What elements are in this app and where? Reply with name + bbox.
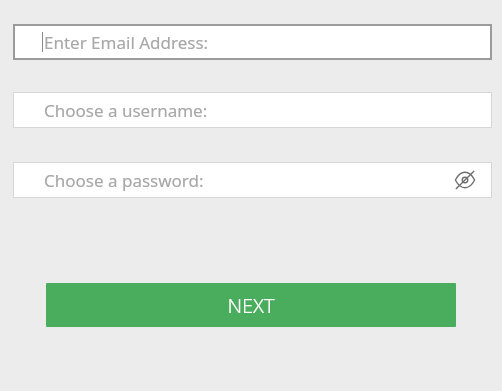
staticText: NEXT bbox=[227, 292, 275, 319]
button[interactable]: Enter Email Address: bbox=[13, 24, 492, 60]
button[interactable]: Show password bbox=[452, 167, 478, 193]
button[interactable]: Choose a username: bbox=[13, 92, 492, 128]
staticText: Choose a username: bbox=[44, 99, 208, 122]
staticText: Choose a password: bbox=[44, 169, 204, 192]
staticText: Enter Email Address: bbox=[44, 31, 209, 54]
button[interactable]: NEXT bbox=[46, 283, 456, 327]
button[interactable]: Choose a password: bbox=[13, 162, 492, 198]
